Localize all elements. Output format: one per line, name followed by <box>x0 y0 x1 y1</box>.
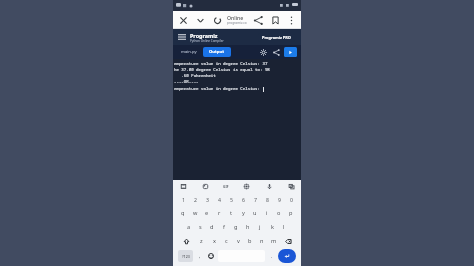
staticText: a <box>187 223 191 231</box>
button[interactable]: 6 <box>237 192 249 206</box>
button[interactable]: 5 <box>225 192 237 206</box>
button[interactable]: 0 <box>285 192 297 206</box>
button[interactable]: v <box>232 234 244 248</box>
button[interactable]: u <box>249 206 261 220</box>
staticText: .60 Fahrenheit <box>174 73 216 79</box>
button[interactable]: , <box>195 250 204 262</box>
button[interactable]: Enter <box>278 249 296 263</box>
button[interactable]: w <box>189 206 201 220</box>
button[interactable]: g <box>230 220 242 234</box>
button[interactable]: b <box>244 234 256 248</box>
button[interactable]: h <box>242 220 254 234</box>
staticText: s <box>199 223 202 231</box>
button[interactable]: f <box>218 220 230 234</box>
button[interactable]: Keyboard switcher <box>178 181 188 191</box>
button[interactable]: Settings <box>241 181 251 191</box>
button[interactable]: p <box>285 206 297 220</box>
button[interactable]: Close <box>177 14 189 26</box>
button[interactable]: 7 <box>249 192 261 206</box>
button[interactable]: z <box>195 234 208 248</box>
staticText: emperature value in degree Celsius: 37 <box>174 61 268 67</box>
button[interactable]: Voice input <box>264 181 274 191</box>
staticText: q <box>181 209 185 217</box>
staticText: x <box>213 237 216 245</box>
staticText: f <box>223 223 225 231</box>
button[interactable]: Settings <box>258 47 269 58</box>
button[interactable]: s <box>194 220 206 234</box>
staticText: r <box>218 209 221 217</box>
button[interactable]: a <box>183 220 194 234</box>
staticText: y <box>242 209 245 217</box>
staticText: 8 <box>266 196 269 203</box>
button[interactable]: e <box>201 206 213 220</box>
button[interactable]: 3 <box>201 192 213 206</box>
staticText: t <box>230 209 233 217</box>
button[interactable]: ?123 <box>178 250 193 262</box>
button[interactable]: More options <box>285 14 297 26</box>
button[interactable]: Backspace <box>280 234 296 248</box>
button[interactable]: r <box>213 206 225 220</box>
button[interactable]: d <box>206 220 218 234</box>
button[interactable]: q <box>177 206 189 220</box>
button[interactable]: x <box>208 234 220 248</box>
button[interactable]: Run <box>284 47 297 57</box>
button[interactable]: Emoji <box>206 250 216 262</box>
staticText: 7 <box>254 196 257 203</box>
button[interactable]: 4 <box>213 192 225 206</box>
button[interactable]: 8 <box>261 192 273 206</box>
staticText: ?123 <box>182 254 190 259</box>
button[interactable]: Translate <box>286 181 296 191</box>
staticText: Online P… <box>227 14 248 21</box>
button[interactable]: GIF <box>223 184 229 188</box>
staticText: 5 <box>230 196 233 203</box>
button[interactable]: y <box>237 206 249 220</box>
button[interactable]: 2 <box>189 192 201 206</box>
button[interactable]: . <box>267 250 276 262</box>
staticText: o <box>277 209 281 217</box>
staticText: Programiz PRO <box>262 35 291 40</box>
staticText: l <box>283 223 285 231</box>
button[interactable]: Share <box>252 14 264 26</box>
button[interactable]: main.py <box>177 47 201 57</box>
staticText: k <box>271 223 274 231</box>
button[interactable]: j <box>254 220 266 234</box>
button[interactable]: n <box>256 234 268 248</box>
button[interactable]: c <box>220 234 232 248</box>
button[interactable]: k <box>266 220 278 234</box>
staticText: u <box>253 209 257 217</box>
staticText: z <box>200 237 203 245</box>
staticText: m <box>271 237 277 245</box>
staticText: 6 <box>242 196 245 203</box>
staticText: b <box>248 237 252 245</box>
button[interactable]: 9 <box>273 192 285 206</box>
staticText: n <box>260 237 264 245</box>
staticText: . <box>271 253 273 260</box>
button[interactable]: Shift <box>178 234 195 248</box>
button[interactable]: Bookmark <box>269 14 281 26</box>
staticText: 4 <box>218 196 221 203</box>
button[interactable]: Output <box>203 47 231 57</box>
staticText: p <box>289 209 293 217</box>
staticText: emperature value in degree Celsius: <box>174 86 263 92</box>
staticText: Output <box>209 49 225 55</box>
staticText: 2 <box>194 196 197 203</box>
button[interactable]: Refresh <box>211 14 223 26</box>
staticText: GIF <box>223 184 229 188</box>
staticText: h <box>246 223 250 231</box>
button[interactable]: t <box>225 206 237 220</box>
staticText: 9 <box>278 196 281 203</box>
button[interactable]: o <box>273 206 285 220</box>
staticText: c <box>225 237 228 245</box>
button[interactable]: Share code <box>271 47 282 58</box>
button[interactable]: Stickers <box>200 181 210 191</box>
button[interactable]: 1 <box>177 192 189 206</box>
button[interactable]: Programiz PRO <box>258 33 295 42</box>
staticText: w <box>193 209 198 217</box>
button[interactable]: Expand <box>194 14 206 26</box>
button[interactable]: l <box>278 220 290 234</box>
button[interactable]: i <box>261 206 273 220</box>
button[interactable]: m <box>268 234 280 248</box>
staticText: , <box>199 253 201 260</box>
button[interactable]: Menu <box>177 32 187 42</box>
